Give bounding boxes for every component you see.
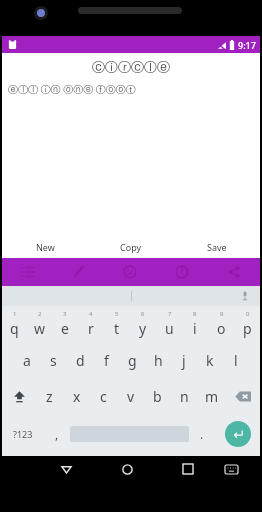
button[interactable]: k — [197, 342, 223, 378]
button[interactable]: 5 — [104, 306, 130, 342]
staticText: h — [154, 351, 163, 370]
button[interactable]: 4 — [78, 306, 104, 342]
button[interactable]: 0 — [234, 306, 260, 342]
button[interactable]: . — [189, 414, 215, 454]
button[interactable]: ?123 — [2, 414, 44, 454]
button[interactable]: 1 — [2, 306, 27, 342]
button[interactable]: , — [44, 414, 70, 454]
button[interactable]: m — [198, 378, 225, 414]
staticText: i — [193, 319, 197, 338]
button[interactable]: Switch keyboard — [214, 456, 248, 482]
button[interactable]: j — [171, 342, 197, 378]
staticText: q — [10, 319, 19, 338]
staticText: m — [205, 387, 219, 406]
button[interactable]: v — [117, 378, 144, 414]
staticText: ⓔⓛⓛ ⓘⓝ ⓞⓝⓔ ⓕⓞⓞⓣ — [8, 82, 136, 96]
button[interactable]: 3 — [52, 306, 78, 342]
button[interactable]: a — [13, 342, 40, 378]
button[interactable]: s — [40, 342, 67, 378]
staticText: 8 — [193, 310, 197, 318]
button[interactable]: Voice input — [238, 289, 252, 303]
staticText: c — [100, 387, 107, 406]
button[interactable]: x — [63, 378, 90, 414]
button[interactable]: Save — [174, 236, 260, 258]
staticText: 7 — [168, 310, 172, 318]
staticText: s — [50, 351, 57, 370]
button[interactable]: c — [90, 378, 117, 414]
staticText: New — [36, 241, 55, 253]
button[interactable]: 8 — [182, 306, 208, 342]
button[interactable]: New — [2, 236, 88, 258]
staticText: 2 — [38, 310, 42, 318]
staticText: a — [23, 351, 31, 370]
staticText: y — [139, 319, 147, 338]
staticText: b — [153, 387, 162, 406]
staticText: k — [206, 351, 214, 370]
staticText: , — [55, 426, 59, 442]
button[interactable]: f — [93, 342, 119, 378]
button[interactable]: l — [223, 342, 249, 378]
button[interactable]: h — [145, 342, 171, 378]
staticText: t — [114, 319, 120, 338]
staticText: p — [243, 319, 252, 338]
staticText: v — [127, 387, 135, 406]
staticText: j — [182, 351, 186, 370]
staticText: 9:17 — [238, 39, 256, 51]
staticText: e — [61, 319, 69, 338]
button[interactable]: z — [36, 378, 63, 414]
button[interactable]: Shift — [2, 378, 36, 414]
staticText: 6 — [141, 310, 145, 318]
staticText: w — [34, 319, 46, 338]
button[interactable]: Hide keyboard — [49, 456, 83, 482]
button[interactable]: 7 — [156, 306, 182, 342]
staticText: 0 — [246, 310, 250, 318]
staticText: 9 — [220, 310, 224, 318]
button[interactable]: Emoji — [104, 258, 156, 286]
staticText: 4 — [89, 310, 93, 318]
button[interactable]: g — [119, 342, 145, 378]
button[interactable]: Enter — [225, 421, 251, 447]
staticText: 1 — [13, 310, 17, 318]
button[interactable]: Home — [110, 456, 144, 482]
staticText: ?123 — [13, 428, 33, 440]
button[interactable]: Backspace — [225, 378, 260, 414]
staticText: z — [46, 387, 53, 406]
staticText: x — [73, 387, 81, 406]
button[interactable]: Timer — [156, 258, 208, 286]
staticText: u — [165, 319, 174, 338]
button[interactable]: 2 — [27, 306, 52, 342]
staticText: g — [128, 351, 137, 370]
staticText: f — [104, 351, 109, 370]
button[interactable]: b — [144, 378, 171, 414]
button[interactable]: 9 — [208, 306, 234, 342]
staticText: Copy — [120, 241, 142, 253]
button[interactable]: 6 — [130, 306, 156, 342]
staticText: ⓒⓘⓡⓒⓛⓔ — [2, 59, 260, 75]
button[interactable]: Recents — [171, 456, 205, 482]
staticText: . — [200, 426, 204, 442]
staticText: d — [76, 351, 85, 370]
button[interactable]: n — [171, 378, 198, 414]
button[interactable]: d — [67, 342, 93, 378]
staticText: o — [217, 319, 226, 338]
staticText: r — [88, 319, 94, 338]
staticText: 3 — [63, 310, 67, 318]
button[interactable]: Copy — [88, 236, 174, 258]
staticText: l — [234, 351, 238, 370]
staticText: Save — [207, 241, 227, 253]
staticText: n — [180, 387, 189, 406]
staticText: 5 — [115, 310, 119, 318]
